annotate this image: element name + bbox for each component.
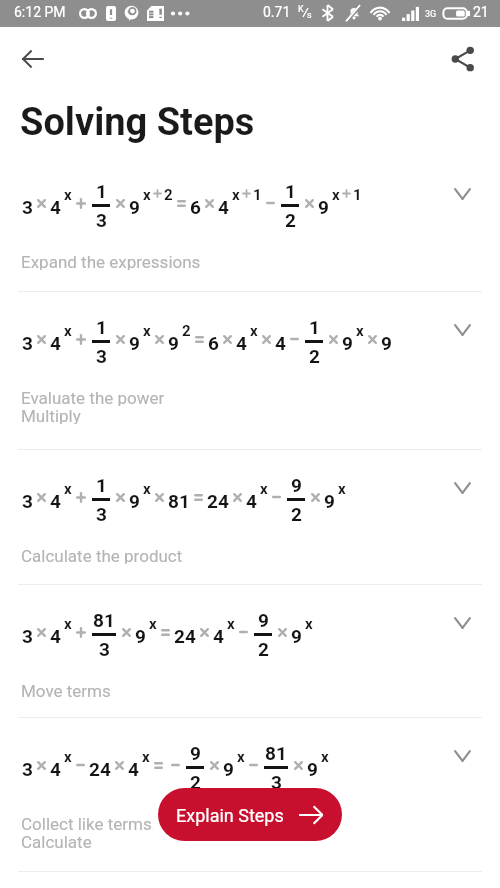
staticText: 1 — [96, 474, 107, 496]
staticText: 1 — [285, 180, 296, 202]
staticText: Expand the expressions — [21, 252, 201, 270]
staticText: x — [232, 186, 240, 204]
staticText: 1 — [96, 180, 107, 202]
staticText: x — [149, 615, 157, 633]
staticText: 2 — [285, 209, 296, 231]
staticText: 81 — [168, 490, 190, 512]
staticText: x — [64, 480, 72, 498]
staticText: x — [64, 748, 72, 766]
staticText: 9 — [129, 196, 140, 218]
staticText: 4 — [236, 332, 247, 354]
staticText: 1 — [309, 316, 320, 338]
staticText: 4 — [246, 490, 257, 512]
staticText: 3 — [22, 332, 33, 354]
staticText: 9 — [258, 609, 269, 631]
staticText: 9 — [129, 490, 140, 512]
button[interactable]: Explain Steps — [158, 788, 342, 841]
staticText: 3 — [271, 771, 282, 793]
button[interactable]: Share — [441, 37, 485, 81]
staticText: 4 — [218, 196, 229, 218]
staticText: x — [332, 186, 340, 204]
staticText: 1 — [253, 186, 262, 204]
staticText: x — [143, 186, 151, 204]
staticText: Solving Steps — [20, 100, 255, 145]
staticText: x — [250, 322, 258, 340]
staticText: s — [307, 10, 312, 21]
staticText: Calculate — [21, 832, 92, 850]
staticText: 9 — [168, 332, 179, 354]
staticText: x — [260, 480, 268, 498]
staticText: 3 — [22, 490, 33, 512]
staticText: x — [305, 615, 313, 633]
staticText: x — [64, 322, 72, 340]
staticText: 4 — [128, 758, 139, 780]
button[interactable]: 3 — [0, 156, 500, 292]
button[interactable]: Expand step — [448, 316, 476, 344]
staticText: x — [64, 615, 72, 633]
staticText: x — [143, 322, 151, 340]
staticText: K — [298, 4, 304, 15]
staticText: 9 — [307, 758, 318, 780]
staticText: 4 — [50, 758, 61, 780]
staticText: 6:12 PM — [14, 4, 66, 20]
staticText: 2 — [258, 638, 269, 660]
staticText: Move terms — [21, 681, 111, 699]
staticText: 4 — [50, 490, 61, 512]
staticText: 6 — [190, 196, 201, 218]
button[interactable]: 3 — [0, 292, 500, 450]
button[interactable]: Expand step — [448, 609, 476, 637]
staticText: 4 — [50, 625, 61, 647]
staticText: 2 — [190, 771, 201, 793]
button[interactable]: 3 — [0, 585, 500, 718]
staticText: 3 — [96, 503, 107, 525]
button[interactable]: 3 — [0, 450, 500, 585]
staticText: 1 — [96, 316, 107, 338]
staticText: 9 — [129, 332, 140, 354]
staticText: x — [338, 480, 346, 498]
button[interactable]: Expand step — [448, 742, 476, 770]
staticText: 3 — [96, 209, 107, 231]
staticText: Multiply — [21, 406, 81, 424]
staticText: 4 — [50, 196, 61, 218]
staticText: 9 — [342, 332, 353, 354]
staticText: 3 — [96, 345, 107, 367]
staticText: 9 — [135, 625, 146, 647]
button[interactable]: Expand step — [448, 474, 476, 502]
staticText: x — [237, 748, 245, 766]
staticText: x — [143, 480, 151, 498]
staticText: 9 — [291, 474, 302, 496]
staticText: 4 — [275, 332, 286, 354]
staticText: Evaluate the power — [21, 388, 165, 406]
staticText: Explain Steps — [176, 805, 284, 826]
staticText: 81 — [265, 742, 287, 764]
staticText: 2 — [309, 345, 320, 367]
button[interactable]: 3 — [0, 718, 500, 872]
staticText: Calculate the product — [21, 546, 183, 564]
staticText: 4 — [213, 625, 224, 647]
staticText: 9 — [190, 742, 201, 764]
staticText: x — [321, 748, 329, 766]
staticText: 9 — [223, 758, 234, 780]
staticText: 2 — [164, 186, 173, 204]
staticText: x — [64, 186, 72, 204]
staticText: 24 — [89, 758, 111, 780]
staticText: 21 — [473, 4, 489, 20]
button[interactable]: Expand step — [448, 180, 476, 208]
staticText: x — [142, 748, 150, 766]
staticText: 0.71 — [263, 4, 291, 20]
staticText: 3 — [22, 625, 33, 647]
staticText: 2 — [291, 503, 302, 525]
staticText: 9 — [291, 625, 302, 647]
staticText: 3 — [22, 196, 33, 218]
staticText: x — [356, 322, 364, 340]
staticText: 9 — [324, 490, 335, 512]
staticText: Collect like terms — [21, 814, 152, 832]
button[interactable]: Back — [9, 35, 57, 83]
staticText: 4 — [50, 332, 61, 354]
staticText: x — [227, 615, 235, 633]
staticText: 81 — [93, 609, 115, 631]
staticText: 6 — [208, 332, 219, 354]
staticText: 3G — [425, 9, 437, 20]
staticText: 3 — [22, 758, 33, 780]
staticText: 1 — [353, 186, 362, 204]
